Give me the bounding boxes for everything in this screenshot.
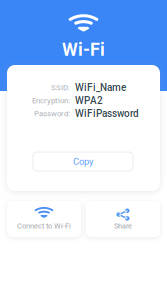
staticText: SSID: (51, 83, 70, 92)
staticText: WiFiPassword (75, 108, 139, 119)
staticText: Copy (73, 156, 93, 167)
staticText: Encryption: (32, 96, 70, 105)
staticText: WPA2 (75, 95, 103, 106)
staticText: Share (114, 222, 132, 230)
button[interactable]: Connect to Wi-Fi (7, 201, 81, 237)
staticText: WiFi_Name (75, 82, 126, 93)
button[interactable]: Copy (33, 152, 133, 171)
staticText: Connect to Wi-Fi (17, 222, 71, 230)
staticText: Password: (34, 109, 70, 118)
button[interactable]: Share (86, 201, 160, 237)
staticText: Wi-Fi (62, 39, 105, 60)
